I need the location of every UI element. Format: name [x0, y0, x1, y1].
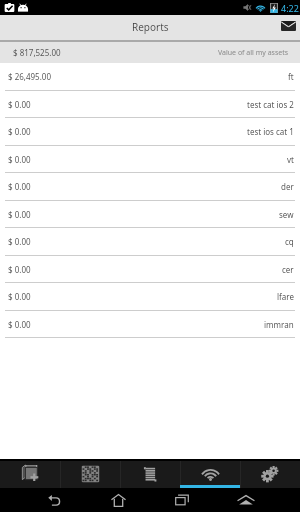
button[interactable]: Keypad	[60, 461, 120, 488]
button[interactable]: Back	[22, 488, 86, 512]
button[interactable]: Recent apps	[150, 488, 214, 512]
staticText: cer	[282, 264, 294, 275]
staticText: test ios cat 1	[247, 126, 294, 137]
button[interactable]: $ 0.00	[0, 118, 300, 146]
button[interactable]: $ 0.00	[0, 173, 300, 201]
staticText: 4:22	[281, 2, 299, 14]
staticText: $ 0.00	[8, 126, 31, 137]
button[interactable]: New	[0, 461, 60, 488]
button[interactable]: Reports list	[120, 461, 180, 488]
button[interactable]: $ 26,495.00	[0, 63, 300, 91]
button[interactable]: $ 0.00	[0, 283, 300, 311]
staticText: Value of all my assets	[218, 48, 289, 58]
staticText: Reports	[132, 20, 169, 34]
staticText: immran	[264, 319, 294, 330]
staticText: ft	[288, 71, 294, 82]
button[interactable]: $ 0.00	[0, 256, 300, 283]
staticText: $ 0.00	[8, 319, 31, 330]
button[interactable]: Hide keyboard	[214, 488, 278, 512]
staticText: $ 0.00	[8, 181, 31, 192]
staticText: $ 0.00	[8, 99, 31, 110]
staticText: cq	[285, 236, 294, 247]
button[interactable]: $ 0.00	[0, 311, 300, 338]
button[interactable]: $ 0.00	[0, 201, 300, 228]
button[interactable]: Home	[86, 488, 150, 512]
button[interactable]: Settings	[240, 461, 300, 488]
staticText: test cat ios 2	[247, 99, 294, 110]
staticText: $ 0.00	[8, 154, 31, 165]
staticText: $ 0.00	[8, 236, 31, 247]
staticText: $ 0.00	[8, 264, 31, 275]
button[interactable]: Reports	[180, 461, 240, 488]
staticText: sew	[279, 209, 294, 220]
staticText: $ 26,495.00	[8, 71, 51, 82]
button[interactable]: Email	[274, 15, 300, 40]
staticText: $ 0.00	[8, 209, 31, 220]
button[interactable]: $ 0.00	[0, 91, 300, 118]
staticText: der	[281, 181, 294, 192]
staticText: vt	[287, 154, 294, 165]
staticText: lfare	[277, 291, 294, 302]
button[interactable]: $ 817,525.00	[0, 42, 300, 63]
button[interactable]: $ 0.00	[0, 146, 300, 173]
staticText: $ 817,525.00	[13, 47, 61, 58]
button[interactable]: $ 0.00	[0, 228, 300, 256]
staticText: $ 0.00	[8, 291, 31, 302]
